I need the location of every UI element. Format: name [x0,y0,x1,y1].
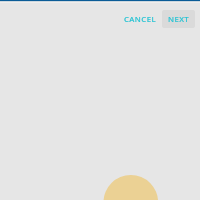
staticText: CANCEL [124,14,156,25]
button[interactable]: CANCEL [119,10,161,28]
button[interactable]: NEXT [162,10,195,28]
staticText: NEXT [168,14,190,25]
